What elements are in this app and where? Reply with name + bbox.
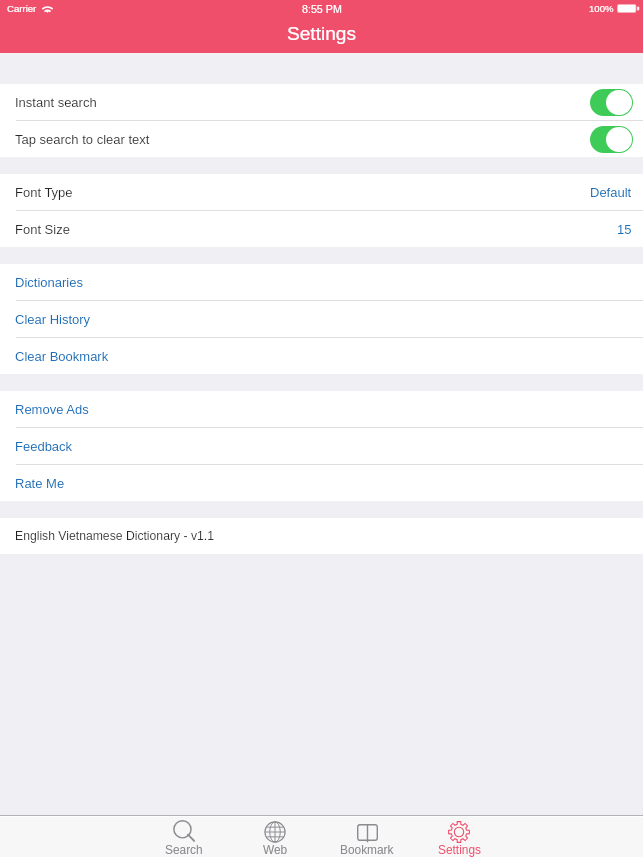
staticText: Carrier [7,3,37,14]
button[interactable]: Web [229,816,321,857]
button[interactable]: Rate Me [0,465,643,501]
button[interactable]: Search [138,816,229,857]
staticText: Font Size [15,222,70,237]
button[interactable]: Font Size [0,211,643,247]
staticText: Clear History [15,312,91,327]
button[interactable]: Instant search [0,84,643,120]
staticText: Settings [438,843,481,856]
staticText: Remove Ads [15,402,89,417]
button[interactable]: Bookmark [321,816,413,857]
button[interactable]: Settings [413,816,505,857]
button[interactable]: Toggle [590,126,633,153]
staticText: Bookmark [340,843,394,856]
staticText: Feedback [15,439,73,454]
button[interactable]: Toggle [590,89,633,116]
staticText: 8:55 PM [302,3,342,15]
button[interactable]: Feedback [0,428,643,464]
staticText: Default [590,185,632,200]
staticText: Clear Bookmark [15,349,109,364]
staticText: Search [165,843,203,856]
button[interactable]: Remove Ads [0,391,643,427]
button[interactable]: Clear Bookmark [0,338,643,374]
staticText: Font Type [15,185,73,200]
staticText: Tap search to clear text [15,132,150,147]
staticText: English Vietnamese Dictionary - v1.1 [15,529,214,543]
button[interactable]: Clear History [0,301,643,337]
button[interactable]: Dictionaries [0,264,643,300]
staticText: Dictionaries [15,275,83,290]
staticText: Instant search [15,95,97,110]
staticText: 15 [617,222,632,237]
button[interactable]: Tap search to clear text [0,121,643,157]
staticText: 100% [589,3,614,14]
staticText: Settings [287,23,356,44]
staticText: Rate Me [15,476,65,491]
button[interactable]: Font Type [0,174,643,210]
staticText: Web [263,843,288,856]
